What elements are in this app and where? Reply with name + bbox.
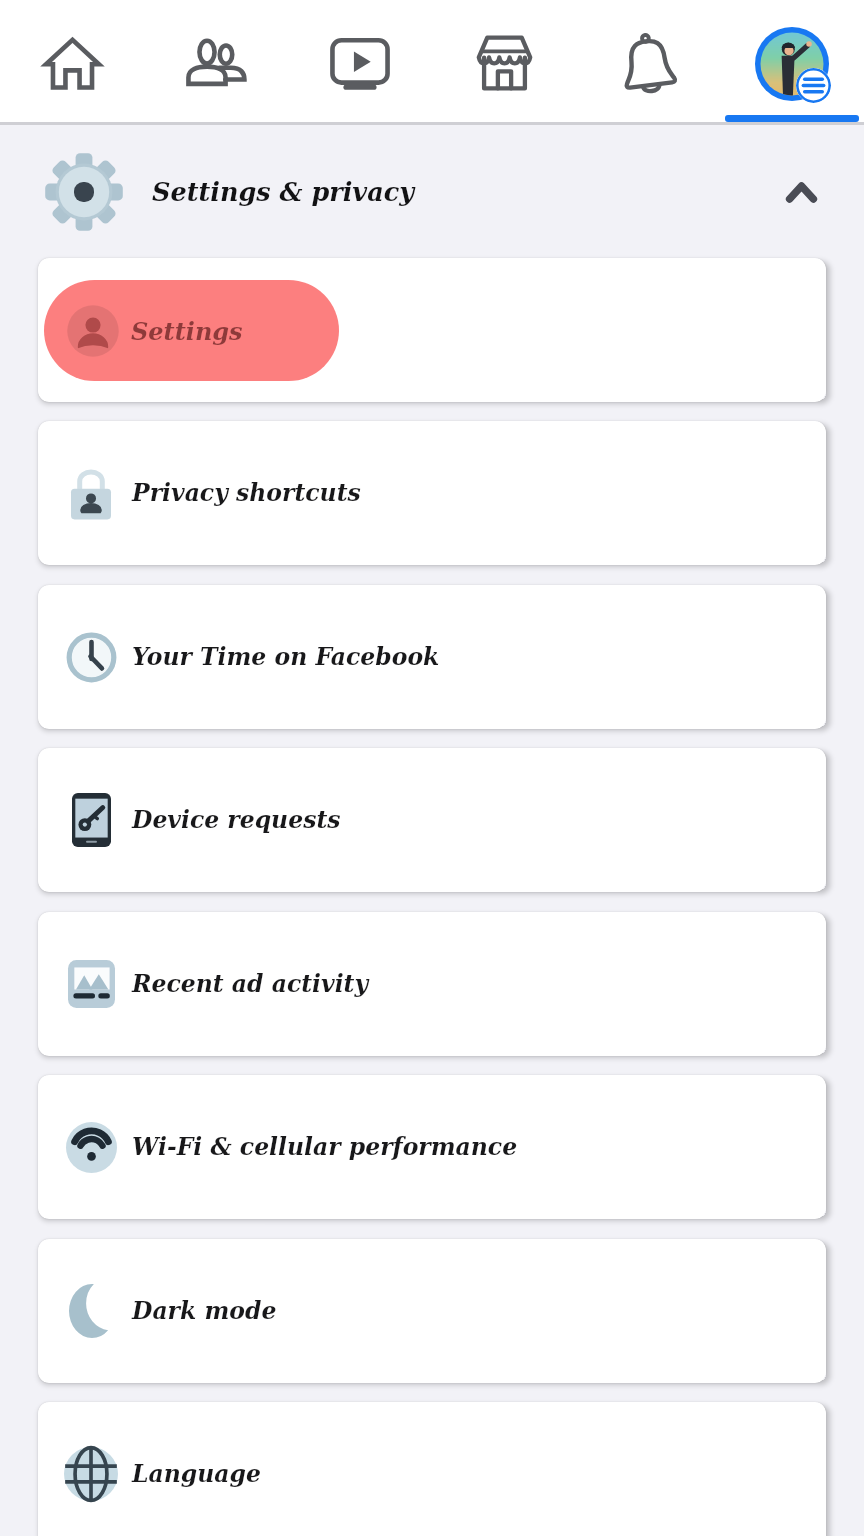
staticText: Dark mode: [132, 1297, 277, 1325]
button[interactable]: Video: [288, 0, 432, 122]
button[interactable]: Dark mode: [38, 1239, 826, 1383]
button[interactable]: Language: [38, 1402, 826, 1536]
staticText: Language: [132, 1460, 261, 1488]
button[interactable]: Privacy shortcuts: [38, 421, 826, 565]
staticText: Recent ad activity: [132, 970, 369, 998]
staticText: Wi-Fi & cellular performance: [132, 1133, 518, 1161]
button[interactable]: Collapse: [763, 154, 839, 230]
button[interactable]: Your Time on Facebook: [38, 585, 826, 729]
button[interactable]: Notifications: [576, 0, 720, 122]
button[interactable]: Marketplace: [432, 0, 576, 122]
button[interactable]: Settings & privacy: [0, 125, 864, 258]
button[interactable]: Wi-Fi & cellular performance: [38, 1075, 826, 1219]
staticText: Your Time on Facebook: [132, 643, 440, 671]
button[interactable]: Menu: [720, 0, 864, 122]
button[interactable]: Friends: [144, 0, 288, 122]
button[interactable]: Recent ad activity: [38, 912, 826, 1056]
staticText: Privacy shortcuts: [132, 479, 361, 507]
button[interactable]: Home: [0, 0, 144, 122]
button[interactable]: Device requests: [38, 748, 826, 892]
staticText: Settings: [131, 317, 243, 345]
staticText: Settings & privacy: [152, 177, 415, 207]
button[interactable]: Settings: [38, 258, 826, 402]
staticText: Device requests: [132, 806, 341, 834]
